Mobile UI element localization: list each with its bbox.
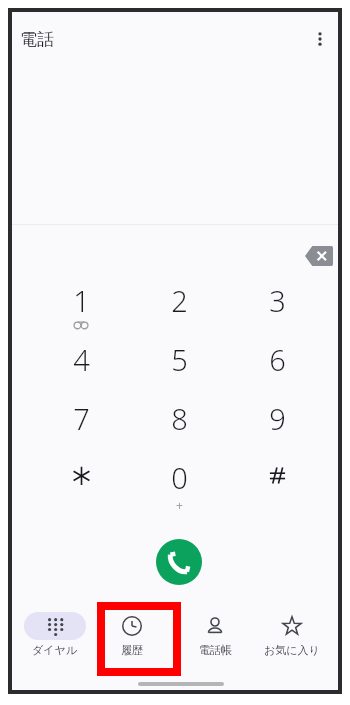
button[interactable]: 電話帳 <box>177 612 253 664</box>
staticText: 4 <box>73 340 90 379</box>
button[interactable]: Call <box>156 539 202 585</box>
staticText: 0 <box>171 458 188 497</box>
staticText: お気に入り <box>264 643 320 657</box>
staticText: 7 <box>73 399 90 438</box>
staticText: ダイヤル <box>32 643 78 657</box>
button[interactable]: 2 <box>143 281 215 335</box>
button[interactable]: お気に入り <box>254 612 330 664</box>
button[interactable]: 履歴 <box>94 612 170 664</box>
staticText: 9 <box>269 399 286 438</box>
button[interactable]: 1 <box>45 281 117 335</box>
button[interactable]: 7 <box>45 399 117 453</box>
staticText: 3 <box>269 281 286 320</box>
staticText: 6 <box>269 340 286 379</box>
staticText: 1 <box>73 281 90 320</box>
staticText: 電話帳 <box>199 643 232 657</box>
button[interactable]: More options <box>308 27 332 51</box>
staticText: 履歴 <box>121 643 143 657</box>
button[interactable]: 4 <box>45 340 117 394</box>
button[interactable]: 5 <box>143 340 215 394</box>
staticText: + <box>176 497 183 512</box>
staticText: 8 <box>171 399 188 438</box>
staticText: 2 <box>171 281 188 320</box>
button[interactable]: 8 <box>143 399 215 453</box>
button[interactable]: Backspace <box>304 244 334 268</box>
button[interactable]: 3 <box>241 281 313 335</box>
staticText: 5 <box>171 340 188 379</box>
button[interactable]: 6 <box>241 340 313 394</box>
button[interactable] <box>45 458 117 512</box>
button[interactable]: 9 <box>241 399 313 453</box>
button[interactable]: ダイヤル <box>17 612 93 664</box>
staticText: 電話 <box>20 29 54 50</box>
button[interactable]: 0 <box>143 458 215 512</box>
button[interactable] <box>241 458 313 512</box>
